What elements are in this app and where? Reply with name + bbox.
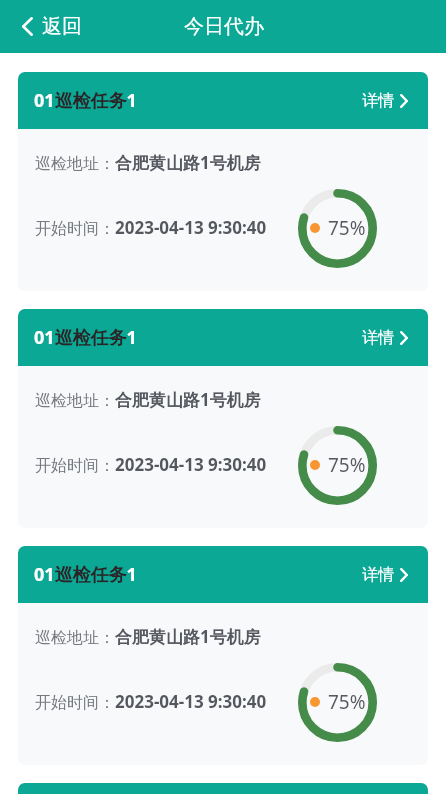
staticText: 详情 — [362, 565, 394, 585]
staticText: 详情 — [362, 91, 394, 111]
button[interactable]: 01巡检任务1 — [18, 309, 428, 528]
button[interactable]: 01巡检任务1 — [18, 72, 428, 291]
staticText: 合肥黄山路1号机房 — [115, 388, 261, 411]
staticText: 巡检地址： — [35, 391, 115, 411]
staticText: 开始时间： — [35, 219, 115, 239]
button[interactable]: 返回 — [12, 6, 92, 47]
staticText: 今日代办 — [184, 14, 264, 39]
staticText: 75% — [328, 452, 366, 478]
staticText: 返回 — [42, 14, 82, 39]
button[interactable]: 01巡检任务1 — [18, 546, 428, 765]
button[interactable]: 详情 — [352, 320, 428, 356]
button[interactable]: 详情 — [352, 557, 428, 593]
button[interactable]: 01巡检任务1 — [18, 783, 428, 794]
staticText: 2023-04-13 9:30:40 — [115, 216, 267, 239]
staticText: 01巡检任务1 — [34, 562, 137, 587]
staticText: 合肥黄山路1号机房 — [115, 151, 261, 174]
staticText: 01巡检任务1 — [34, 325, 137, 350]
staticText: 01巡检任务1 — [34, 88, 137, 113]
staticText: 开始时间： — [35, 693, 115, 713]
staticText: 2023-04-13 9:30:40 — [115, 690, 267, 713]
staticText: 开始时间： — [35, 456, 115, 476]
button[interactable]: 详情 — [352, 83, 428, 119]
staticText: 75% — [328, 689, 366, 715]
staticText: 2023-04-13 9:30:40 — [115, 453, 267, 476]
staticText: 巡检地址： — [35, 154, 115, 174]
staticText: 巡检地址： — [35, 628, 115, 648]
staticText: 合肥黄山路1号机房 — [115, 625, 261, 648]
staticText: 详情 — [362, 328, 394, 348]
staticText: 75% — [328, 215, 366, 241]
